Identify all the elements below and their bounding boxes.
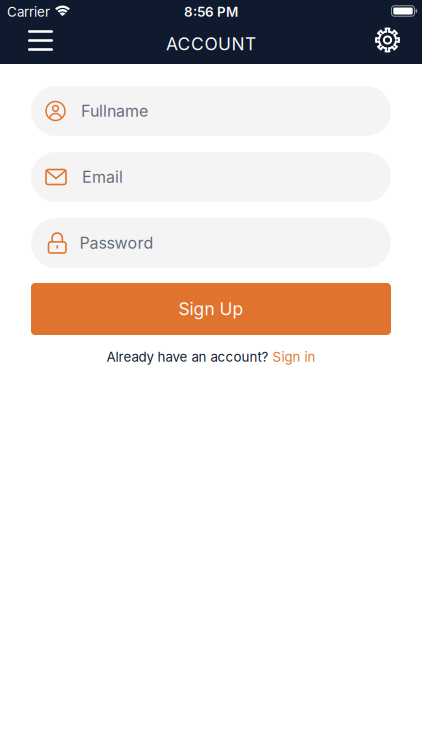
- button[interactable]: Menu: [0, 26, 53, 62]
- staticText: Email: [82, 168, 123, 186]
- button[interactable]: Password: [31, 218, 391, 268]
- staticText: Sign Up: [178, 299, 243, 319]
- button[interactable]: Sign in: [272, 349, 315, 365]
- button[interactable]: Sign Up: [31, 283, 391, 335]
- button[interactable]: Email: [31, 152, 391, 202]
- button[interactable]: Settings: [375, 25, 422, 62]
- staticText: Carrier: [7, 4, 50, 20]
- button[interactable]: Fullname: [31, 86, 391, 136]
- staticText: 8:56 PM: [184, 4, 238, 20]
- staticText: ACCOUNT: [166, 34, 256, 54]
- staticText: Already have an account?: [106, 349, 268, 365]
- staticText: Sign in: [272, 349, 315, 365]
- staticText: Fullname: [81, 102, 148, 120]
- staticText: Password: [79, 234, 153, 252]
